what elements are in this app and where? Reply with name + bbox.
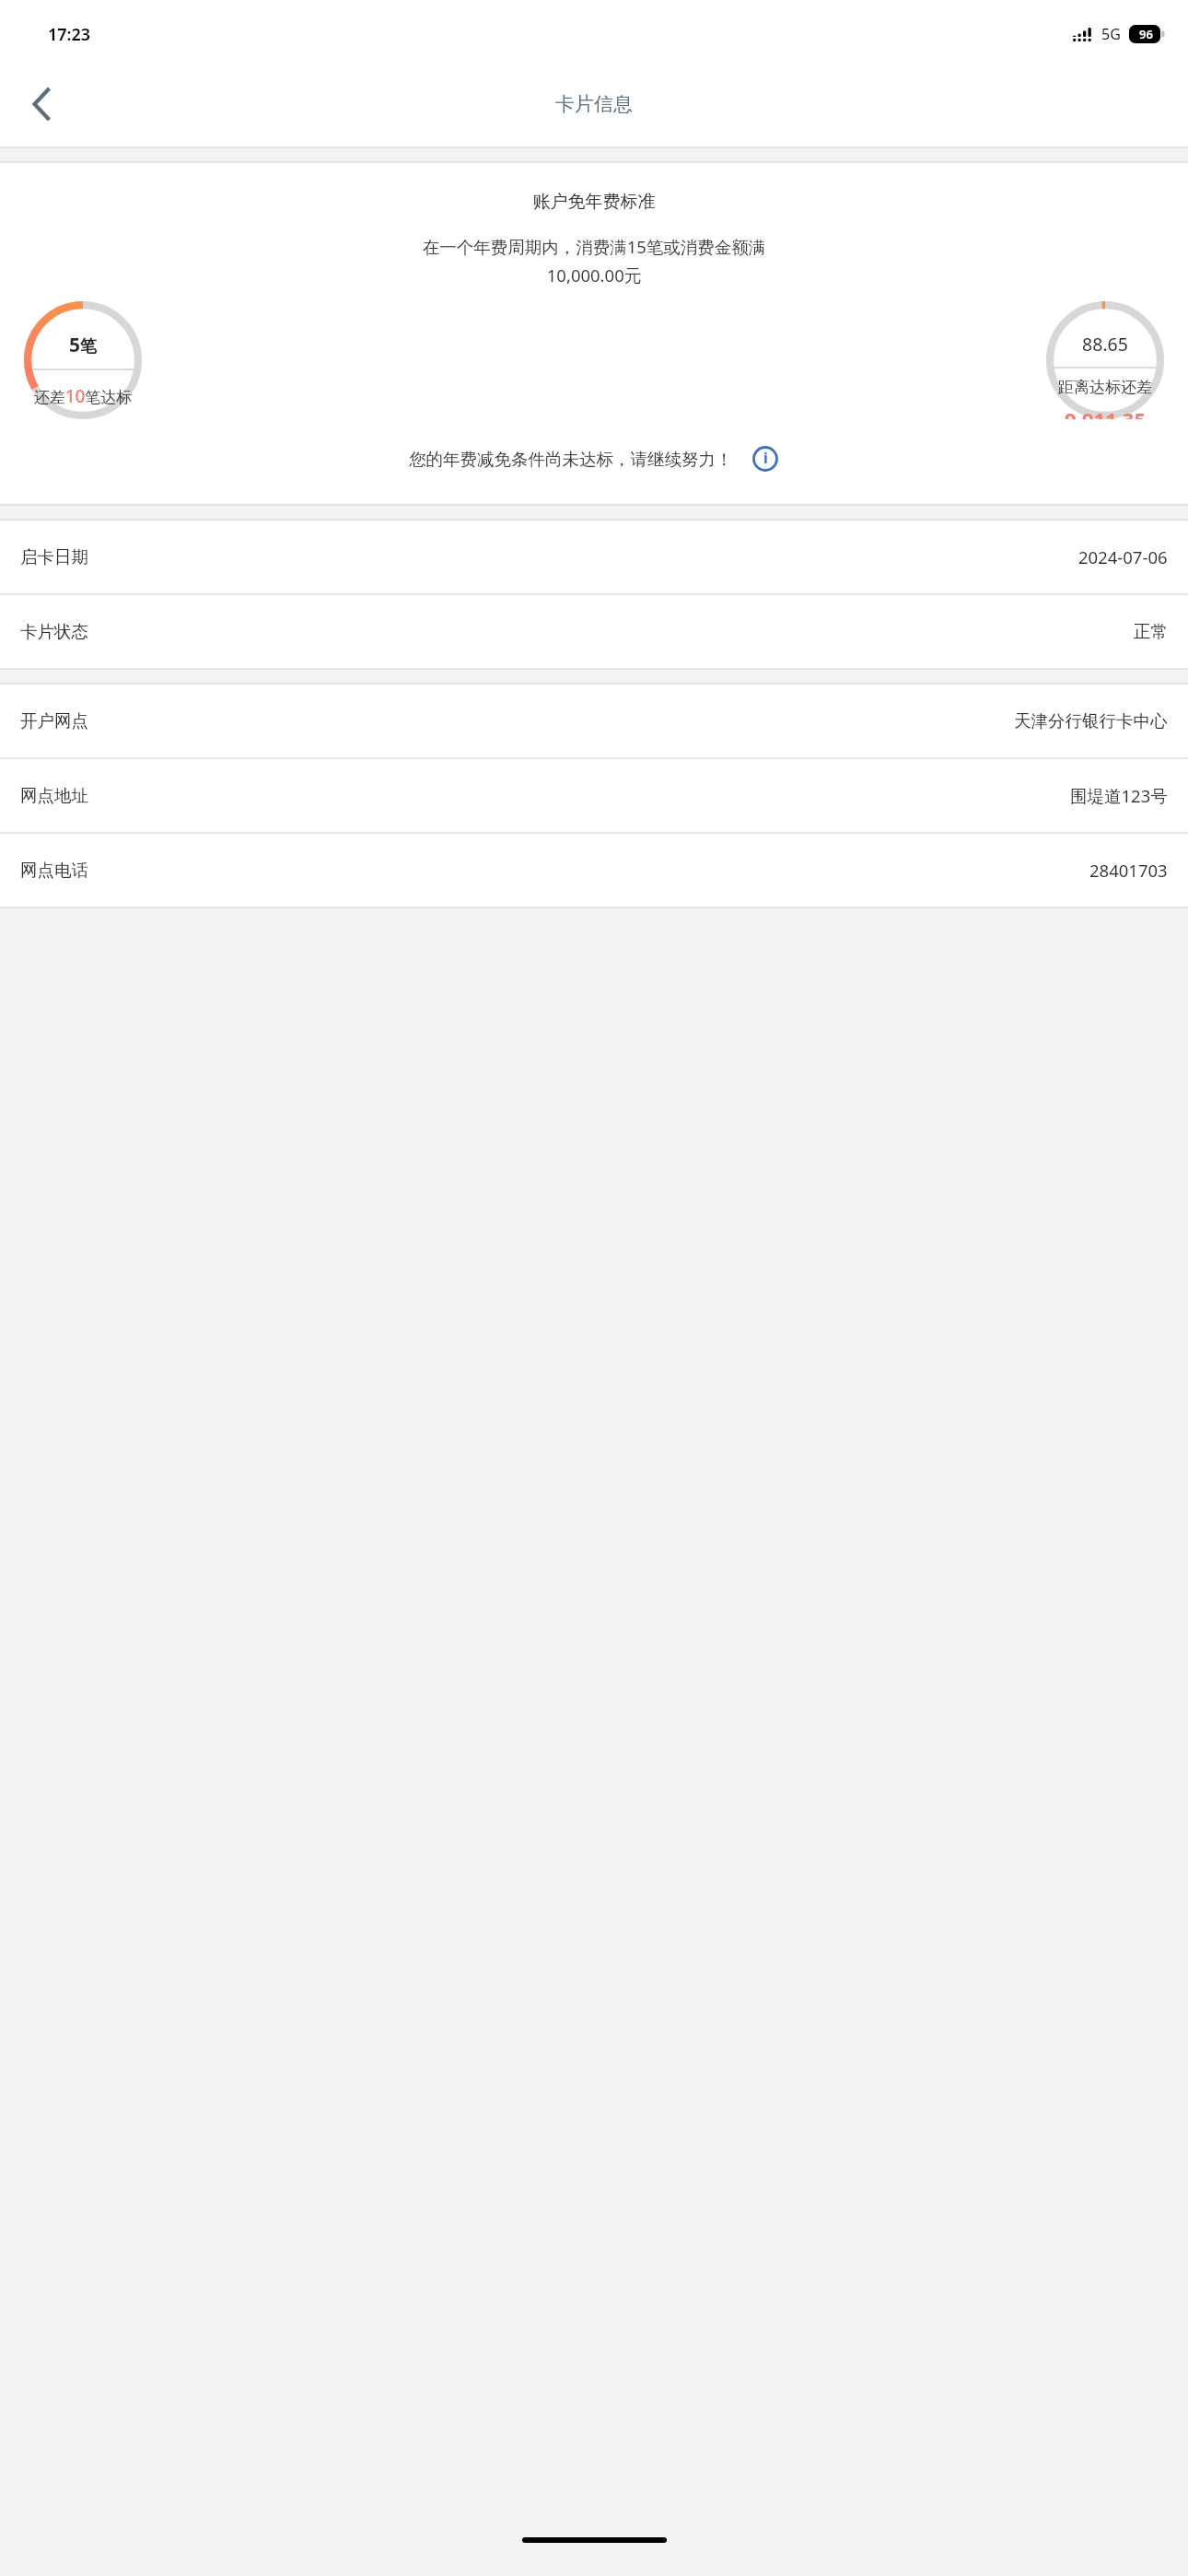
staticText: 距离达标还差 bbox=[1054, 378, 1156, 397]
button[interactable]: 启卡日期 bbox=[0, 521, 1188, 593]
staticText: 启卡日期 bbox=[20, 546, 88, 568]
button[interactable]: Back bbox=[0, 62, 83, 146]
staticText: 围堤道123号 bbox=[1070, 784, 1168, 807]
staticText: 正常 bbox=[1134, 621, 1168, 642]
staticText: 卡片信息 bbox=[555, 92, 633, 116]
staticText: 28401703 bbox=[1089, 859, 1168, 882]
button[interactable]: 网点电话 bbox=[0, 834, 1188, 907]
staticText: 2024-07-06 bbox=[1078, 545, 1168, 568]
button[interactable]: 卡片状态 bbox=[0, 595, 1188, 668]
staticText: 账户免年费标准 bbox=[0, 191, 1188, 213]
other: Information bbox=[751, 445, 779, 473]
staticText: 5笔 bbox=[32, 332, 134, 358]
staticText: 9,911.35 bbox=[1054, 405, 1156, 419]
staticText: 天津分行银行卡中心 bbox=[1014, 710, 1168, 732]
staticText: 卡片状态 bbox=[20, 621, 88, 642]
staticText: 还差10笔达标 bbox=[32, 384, 134, 408]
staticText: 17:23 bbox=[48, 23, 91, 46]
staticText: 您的年费减免条件尚未达标，请继续努力！ bbox=[409, 449, 733, 470]
staticText: 5G bbox=[1101, 24, 1121, 44]
staticText: 网点电话 bbox=[20, 860, 88, 881]
staticText: 88.65 bbox=[1054, 332, 1156, 357]
button[interactable]: 开户网点 bbox=[0, 685, 1188, 757]
button[interactable]: 网点地址 bbox=[0, 759, 1188, 832]
staticText: i bbox=[763, 448, 768, 468]
staticText: 网点地址 bbox=[20, 785, 88, 806]
staticText: 开户网点 bbox=[20, 710, 88, 732]
button[interactable]: 您的年费减免条件尚未达标，请继续努力！ bbox=[0, 438, 1188, 480]
staticText: 96 bbox=[1139, 26, 1153, 42]
staticText: 在一个年费周期内，消费满15笔或消费金额满 10,000.00元 bbox=[28, 235, 1160, 287]
